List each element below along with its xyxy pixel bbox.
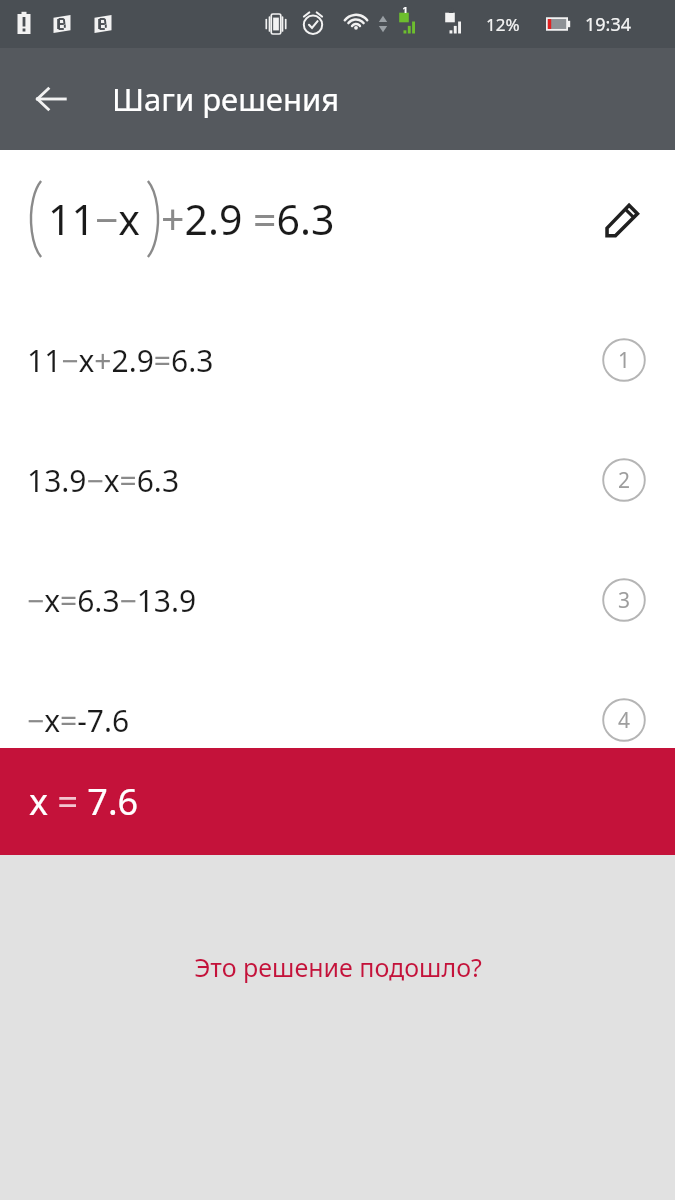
staticText: 19:34 bbox=[585, 12, 632, 37]
button[interactable]: 11−x bbox=[0, 150, 675, 300]
button[interactable]: Это решение подошло? bbox=[0, 937, 675, 997]
button[interactable]: 11−x+2.9=6.3 bbox=[0, 300, 675, 420]
button[interactable]: Назад bbox=[22, 70, 80, 128]
staticText: 1 bbox=[618, 346, 631, 375]
staticText: −x=-7.6 bbox=[27, 700, 130, 741]
staticText: 2 bbox=[446, 3, 456, 15]
staticText: 13.9−x=6.3 bbox=[27, 460, 180, 501]
staticText: x = 7.6 bbox=[29, 777, 139, 826]
staticText: 4 bbox=[618, 706, 631, 735]
button[interactable]: Редактировать bbox=[593, 189, 653, 249]
button[interactable]: −x=-7.6 bbox=[0, 660, 675, 780]
staticText: 2 bbox=[618, 466, 631, 495]
staticText: 11−x+2.9=6.3 bbox=[27, 340, 214, 381]
staticText: +2.9 =6.3 bbox=[161, 191, 335, 247]
staticText: 3 bbox=[618, 586, 631, 615]
staticText: Шаги решения bbox=[112, 78, 340, 120]
staticText: 1 bbox=[400, 3, 410, 15]
button[interactable]: 13.9−x=6.3 bbox=[0, 420, 675, 540]
staticText: 12% bbox=[486, 13, 520, 36]
staticText: Это решение подошло? bbox=[194, 950, 482, 984]
staticText: 11−x bbox=[48, 191, 141, 247]
staticText: −x=6.3−13.9 bbox=[27, 580, 197, 621]
button[interactable]: −x=6.3−13.9 bbox=[0, 540, 675, 660]
button[interactable]: x = 7.6 bbox=[0, 748, 675, 855]
